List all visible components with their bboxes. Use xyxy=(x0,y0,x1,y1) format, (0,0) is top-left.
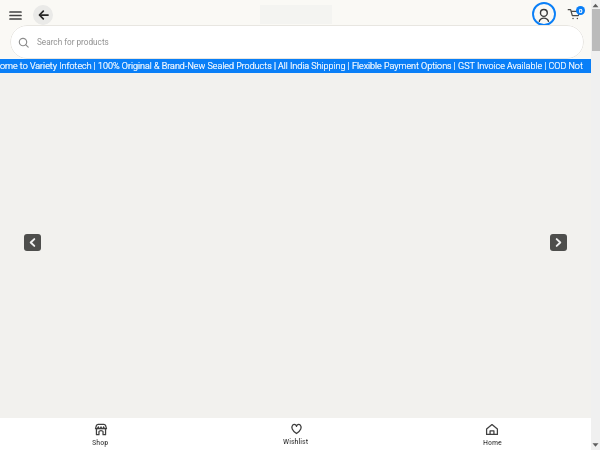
button[interactable]: Previous xyxy=(24,234,41,251)
button[interactable]: Next xyxy=(550,234,567,251)
button[interactable]: Back xyxy=(33,5,53,25)
button[interactable]: Menu xyxy=(2,2,28,28)
button[interactable]: Cart xyxy=(565,4,585,24)
button[interactable]: Home xyxy=(394,418,590,450)
button[interactable]: Wishlist xyxy=(198,418,394,450)
staticText: Search for products xyxy=(37,37,109,47)
staticText: 0 xyxy=(579,7,583,14)
button[interactable]: Shop xyxy=(3,418,198,450)
button[interactable]: Search for products xyxy=(10,25,584,59)
staticText: Wishlist xyxy=(283,438,309,446)
button[interactable]: Account xyxy=(532,2,556,26)
staticText: Home xyxy=(483,439,502,447)
staticText: Shop xyxy=(92,439,109,447)
staticText: ome to Variety Infotech | 100% Original … xyxy=(0,61,583,72)
